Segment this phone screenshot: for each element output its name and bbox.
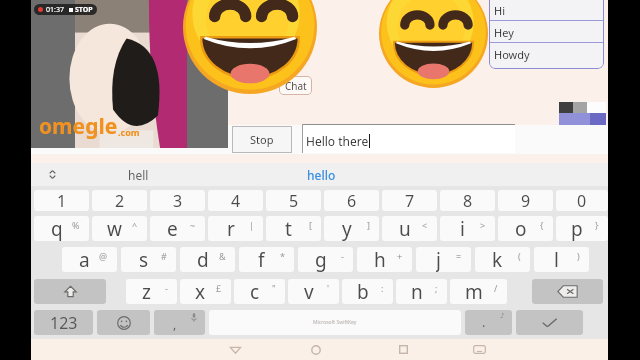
button[interactable]: e [150, 216, 205, 241]
button[interactable]: 1 [34, 190, 89, 211]
staticText: j [436, 247, 441, 272]
staticText: { [540, 219, 544, 231]
staticText: 8 [463, 190, 473, 211]
staticText: 0 [577, 190, 587, 211]
button[interactable]: x [180, 279, 231, 304]
button[interactable]: Comma and voice input [154, 310, 205, 335]
button[interactable]: k [475, 247, 530, 272]
staticText: . [482, 313, 486, 331]
staticText: " [272, 282, 276, 294]
button[interactable]: 0 [556, 190, 608, 211]
staticText: - [165, 282, 168, 294]
staticText: [ [309, 219, 312, 231]
button[interactable]: j [416, 247, 471, 272]
button[interactable]: i [440, 216, 495, 241]
button[interactable]: s [121, 247, 176, 272]
staticText: Hey [494, 25, 514, 40]
button[interactable]: q [34, 216, 89, 241]
staticText: | [249, 219, 254, 231]
button[interactable]: o [498, 216, 553, 241]
button[interactable]: Enter [516, 310, 583, 335]
staticText: z [142, 279, 151, 304]
button[interactable]: f [239, 247, 294, 272]
button[interactable]: h [357, 247, 412, 272]
staticText: k [492, 247, 503, 272]
staticText: & [219, 250, 226, 262]
button[interactable]: More suggestions [41, 163, 63, 186]
button[interactable]: 3 [150, 190, 205, 211]
staticText: ( [518, 250, 521, 262]
button[interactable]: 8 [440, 190, 495, 211]
staticText: / [494, 282, 498, 294]
button[interactable]: Home [296, 339, 336, 360]
button[interactable]: 123 [34, 310, 93, 335]
button[interactable]: Shift [34, 279, 106, 304]
button[interactable]: Stop [232, 126, 292, 153]
staticText: * [280, 250, 285, 262]
button[interactable]: 7 [382, 190, 437, 211]
button[interactable]: c [234, 279, 285, 304]
button[interactable]: Hide keyboard [459, 339, 499, 360]
staticText: n [411, 279, 423, 304]
staticText: 2 [115, 190, 125, 211]
button[interactable]: hello [261, 163, 381, 186]
staticText: Chat [285, 79, 307, 93]
button[interactable]: Hi [489, 0, 604, 21]
staticText: 4 [231, 190, 241, 211]
button[interactable]: m [450, 279, 507, 304]
staticText: d [197, 247, 209, 272]
staticText: m [465, 279, 483, 304]
staticText: t [285, 216, 292, 241]
button[interactable]: d [180, 247, 235, 272]
staticText: r [227, 216, 235, 241]
button[interactable]: Back [215, 339, 255, 360]
button[interactable]: hell [78, 163, 198, 186]
staticText: 7 [405, 190, 415, 211]
button[interactable]: v [288, 279, 339, 304]
button[interactable]: t [266, 216, 321, 241]
button[interactable]: Hey [489, 21, 604, 43]
staticText: ♪ [500, 312, 505, 320]
staticText: > [480, 219, 486, 231]
staticText: .com [118, 126, 140, 138]
button[interactable]: r [208, 216, 263, 241]
staticText: , [173, 316, 177, 332]
button[interactable]: p [556, 216, 608, 241]
button[interactable]: b [342, 279, 393, 304]
staticText: ' [327, 282, 330, 294]
staticText: Hello there [306, 133, 369, 149]
staticText: e [167, 216, 178, 241]
button[interactable]: Recents [383, 339, 423, 360]
button[interactable]: Backspace [532, 279, 603, 304]
button[interactable]: a [62, 247, 117, 272]
button[interactable]: y [324, 216, 379, 241]
button[interactable]: Stop recording [34, 4, 97, 15]
staticText: Stop [250, 132, 274, 147]
button[interactable]: w [92, 216, 147, 241]
staticText: f [258, 247, 265, 272]
button[interactable]: l [534, 247, 589, 272]
staticText: Hi [494, 3, 505, 18]
button[interactable]: Period [465, 310, 512, 335]
button[interactable]: Chat [279, 76, 312, 95]
button[interactable]: u [382, 216, 437, 241]
staticText: STOP [75, 5, 93, 15]
staticText: 9 [521, 190, 531, 211]
button[interactable]: Emoji [97, 310, 150, 335]
button[interactable]: Space [209, 310, 461, 335]
button[interactable]: z [126, 279, 177, 304]
staticText: ) [577, 250, 580, 262]
staticText: v [304, 279, 314, 304]
button[interactable]: g [298, 247, 353, 272]
button[interactable]: Hello there [302, 124, 515, 153]
button[interactable]: 5 [266, 190, 321, 211]
button[interactable]: 2 [92, 190, 147, 211]
staticText: } [595, 219, 599, 231]
button[interactable]: 9 [498, 190, 553, 211]
button[interactable]: n [396, 279, 447, 304]
button[interactable]: 6 [324, 190, 379, 211]
staticText: hello [307, 167, 336, 183]
staticText: l [554, 247, 559, 272]
button[interactable]: 4 [208, 190, 263, 211]
button[interactable]: Howdy [489, 43, 604, 65]
